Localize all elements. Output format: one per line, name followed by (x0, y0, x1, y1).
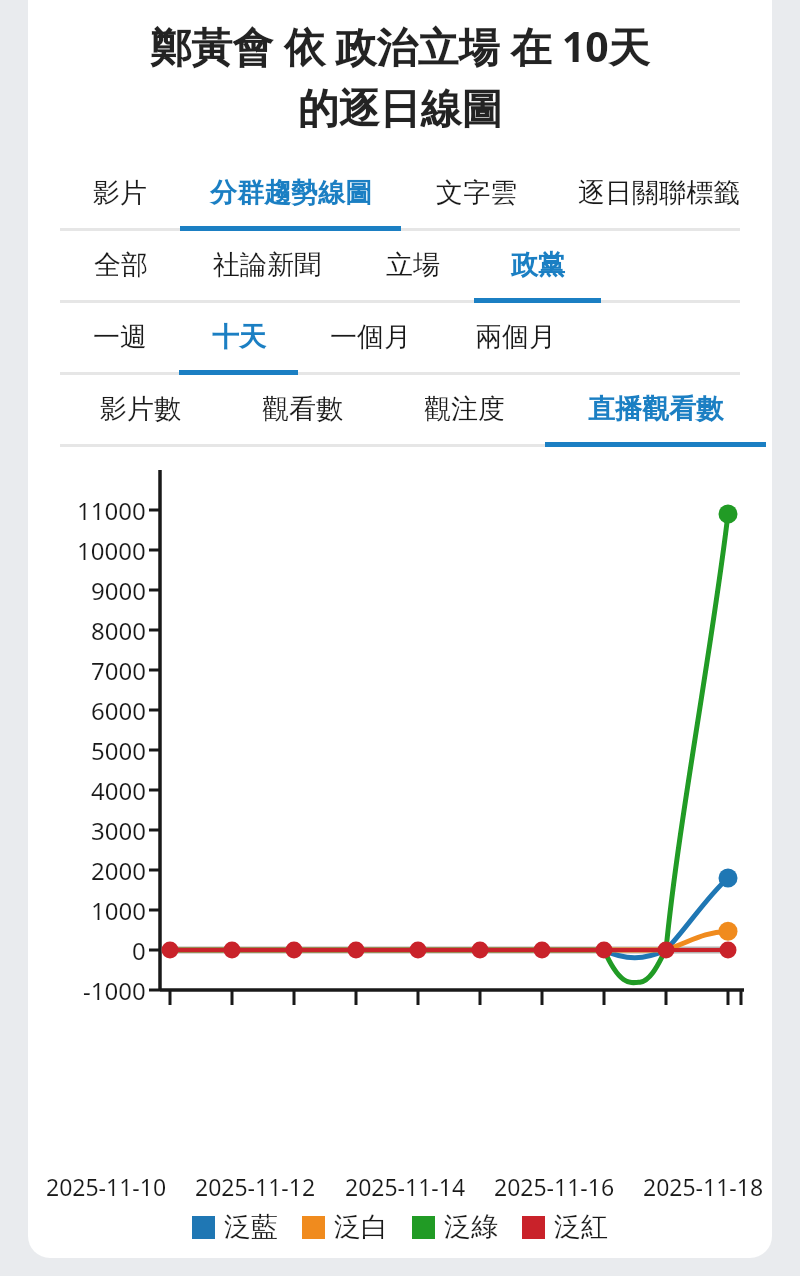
staticText: 7000 (91, 654, 146, 687)
other: 每日直播觀看數折線圖 (28, 447, 772, 1210)
staticText: 立場 (386, 248, 440, 282)
button[interactable]: 泛綠 (412, 1210, 498, 1244)
staticText: 2000 (91, 854, 146, 887)
button[interactable]: 分群趨勢線圖 (180, 159, 401, 226)
button[interactable]: 社論新聞 (182, 231, 352, 298)
staticText: -1000 (83, 974, 146, 1007)
button[interactable]: 政黨 (474, 231, 601, 298)
staticText: 全部 (94, 248, 148, 282)
staticText: 11000 (77, 494, 146, 527)
staticText: 2025-11-10 (46, 1171, 167, 1202)
button[interactable]: 十天 (179, 303, 298, 370)
button[interactable]: 立場 (352, 231, 474, 298)
staticText: 1000 (91, 894, 146, 927)
staticText: 6000 (91, 694, 146, 727)
staticText: 分群趨勢線圖 (210, 176, 372, 210)
staticText: 觀看數 (262, 392, 343, 426)
staticText: 影片 (93, 176, 147, 210)
staticText: 兩個月 (475, 320, 556, 354)
button[interactable]: 逐日關聯標籤 (551, 159, 766, 226)
staticText: 十天 (212, 320, 266, 354)
staticText: 泛白 (334, 1210, 388, 1244)
staticText: 政黨 (511, 248, 565, 282)
staticText: 一週 (93, 320, 147, 354)
staticText: 10000 (77, 534, 146, 567)
staticText: 0 (132, 934, 146, 967)
staticText: 2025-11-18 (643, 1171, 764, 1202)
staticText: 3000 (91, 814, 146, 847)
button[interactable]: 觀看數 (221, 375, 383, 442)
staticText: 直播觀看數 (588, 392, 723, 426)
staticText: 2025-11-14 (345, 1171, 466, 1202)
button[interactable]: 影片數 (60, 375, 221, 442)
button[interactable]: 一週 (60, 303, 179, 370)
button[interactable]: 文字雲 (401, 159, 551, 226)
button[interactable]: 影片 (60, 159, 180, 226)
staticText: 逐日關聯標籤 (578, 176, 740, 210)
button[interactable]: 觀注度 (383, 375, 545, 442)
staticText: 泛綠 (444, 1210, 498, 1244)
staticText: 文字雲 (436, 176, 517, 210)
button[interactable]: 兩個月 (443, 303, 588, 370)
button[interactable]: 泛紅 (522, 1210, 608, 1244)
staticText: 9000 (91, 574, 146, 607)
staticText: 2025-11-16 (494, 1171, 615, 1202)
button[interactable]: 全部 (60, 231, 182, 298)
staticText: 觀注度 (424, 392, 505, 426)
staticText: 8000 (91, 614, 146, 647)
staticText: 泛紅 (554, 1210, 608, 1244)
staticText: 鄭黃會 依 政治立場 在 10天 的逐日線圖 (150, 18, 650, 135)
staticText: 2025-11-12 (195, 1171, 316, 1202)
button[interactable]: 泛藍 (192, 1210, 278, 1244)
staticText: 5000 (91, 734, 146, 767)
staticText: 一個月 (330, 320, 411, 354)
button[interactable]: 泛白 (302, 1210, 388, 1244)
button[interactable]: 直播觀看數 (545, 375, 766, 442)
staticText: 社論新聞 (213, 248, 321, 282)
staticText: 影片數 (100, 392, 181, 426)
staticText: 4000 (91, 774, 146, 807)
button[interactable]: 一個月 (298, 303, 443, 370)
staticText: 泛藍 (224, 1210, 278, 1244)
